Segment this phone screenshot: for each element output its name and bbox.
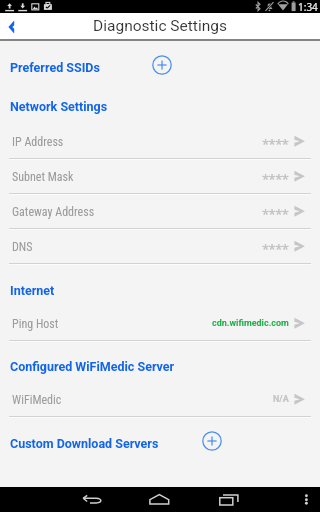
button[interactable]: Ping Host — [0, 307, 320, 342]
staticText: **** — [262, 240, 289, 258]
staticText: IP Address — [12, 135, 64, 149]
staticText: cdn.wifimedic.com — [212, 318, 289, 329]
staticText: N/A — [273, 394, 289, 405]
staticText: Internet — [10, 283, 55, 298]
staticText: Preferred SSIDs — [10, 60, 100, 75]
staticText: Network Settings — [10, 99, 108, 114]
staticText: DNS — [12, 240, 33, 254]
button[interactable]: Custom Download Servers — [0, 433, 320, 453]
button[interactable]: IP Address — [0, 125, 320, 160]
button[interactable]: Recent apps — [208, 487, 248, 512]
staticText: Diagnostic Settings — [93, 17, 227, 35]
button[interactable]: Subnet Mask — [0, 160, 320, 195]
button[interactable]: Gateway Address — [0, 195, 320, 230]
button[interactable]: WiFiMedic — [0, 383, 320, 418]
button[interactable]: More options — [294, 487, 320, 512]
staticText: **** — [262, 135, 289, 153]
staticText: Custom Download Servers — [10, 436, 159, 451]
staticText: 1:34 — [298, 0, 318, 13]
staticText: Gateway Address — [12, 205, 95, 219]
staticText: Subnet Mask — [12, 170, 74, 184]
button[interactable]: Back — [76, 487, 110, 512]
staticText: WiFiMedic — [12, 393, 62, 407]
staticText: **** — [262, 205, 289, 223]
staticText: **** — [262, 170, 289, 188]
button[interactable]: Back — [0, 13, 28, 41]
staticText: Ping Host — [12, 317, 59, 331]
button[interactable]: DNS — [0, 230, 320, 265]
staticText: Configured WiFiMedic Server — [10, 359, 175, 374]
button[interactable]: Preferred SSIDs — [0, 57, 320, 77]
button[interactable]: Home — [140, 487, 180, 512]
